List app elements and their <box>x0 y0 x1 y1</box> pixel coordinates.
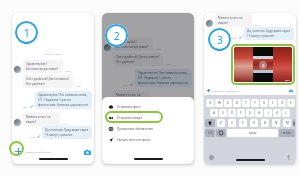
staticText: Написать сообщение <box>213 89 239 92</box>
button[interactable]: Y <box>251 99 259 107</box>
staticText: T <box>245 101 247 105</box>
button[interactable]: Олег удобный? Доста нового? Нет удобнее! <box>113 53 163 66</box>
button[interactable]: M <box>283 119 291 127</box>
button[interactable]: Language <box>209 155 214 160</box>
staticText: 123 <box>208 131 213 135</box>
staticText: вчера, 15 июня <box>44 52 63 55</box>
button[interactable]: Указать место встречи <box>102 134 194 145</box>
button[interactable]: Send video highlight <box>105 111 163 123</box>
button[interactable]: E <box>224 99 232 107</box>
staticText: Можете снять на видео? <box>26 115 57 124</box>
button[interactable]: N <box>272 119 280 127</box>
button[interactable]: B <box>261 119 269 127</box>
button[interactable]: Да, конечно. Буду дома через 15 минут, п… <box>142 104 192 117</box>
staticText: Отправить фото <box>117 105 141 109</box>
button[interactable]: Здравствуйте! Бесплатная доставка? <box>113 38 153 51</box>
button[interactable]: U <box>260 99 268 107</box>
button[interactable]: Можете снять на видео? <box>23 113 60 126</box>
button[interactable]: F <box>237 109 245 117</box>
staticText: Здравствуйте! Это лежалая котва, 5/1. На… <box>138 71 189 85</box>
staticText: G <box>249 111 252 115</box>
button[interactable]: V <box>250 119 258 127</box>
button[interactable]: Shift <box>205 119 215 127</box>
staticText: Здравствуйте! Это лежалая котва, 5/1. На… <box>38 93 89 107</box>
staticText: Z <box>220 121 222 125</box>
staticText: R <box>236 101 238 105</box>
button[interactable]: J <box>264 109 272 117</box>
button[interactable]: return <box>279 129 295 137</box>
button[interactable]: I <box>269 99 277 107</box>
button[interactable]: Можете снять на видео? <box>113 91 150 104</box>
button[interactable]: C <box>239 119 247 127</box>
button[interactable]: Здравствуйте! Это лежалая котва, 5/1. На… <box>35 91 92 109</box>
staticText: U <box>263 101 266 105</box>
staticText: Прикрепить объявление <box>117 127 153 131</box>
staticText: P <box>290 101 292 105</box>
button[interactable]: R <box>233 99 241 107</box>
button[interactable]: D <box>228 109 236 117</box>
button[interactable]: Play video <box>259 61 267 69</box>
staticText: E <box>227 101 229 105</box>
button[interactable]: H <box>255 109 263 117</box>
staticText: Олег удобный? Доста нового? Нет удобнее! <box>26 77 70 86</box>
button[interactable]: space <box>227 129 278 137</box>
staticText: J <box>268 111 269 115</box>
button[interactable]: 123 <box>205 129 215 137</box>
staticText: Написать сообщение <box>25 150 51 153</box>
staticText: M <box>286 121 289 125</box>
button[interactable]: W <box>215 99 223 107</box>
button[interactable]: Z <box>217 119 225 127</box>
staticText: Здравствуйте! Бесплатная доставка? <box>116 40 148 49</box>
staticText: I <box>272 101 274 105</box>
staticText: 15:31 <box>165 62 172 65</box>
staticText: S <box>222 111 224 115</box>
staticText: N <box>275 121 278 125</box>
button[interactable]: L <box>282 109 290 117</box>
staticText: 15:31 <box>22 105 29 108</box>
button[interactable]: Q <box>206 99 214 107</box>
button[interactable]: G <box>246 109 254 117</box>
staticText: 15:31 <box>29 135 36 138</box>
button[interactable]: P <box>287 99 295 107</box>
button[interactable]: Здравствуйте! Бесплатная доставка? <box>23 60 63 73</box>
button[interactable]: Emoji <box>216 129 226 137</box>
button[interactable]: Camera <box>288 88 293 93</box>
staticText: D <box>231 111 234 115</box>
staticText: 15:31 <box>254 23 261 26</box>
button[interactable]: Attach button highlight <box>9 141 24 156</box>
button[interactable]: Dictation <box>286 155 291 160</box>
button[interactable]: A <box>210 109 218 117</box>
staticText: Указать место встречи <box>117 138 150 142</box>
button[interactable]: Camera <box>83 148 91 156</box>
button[interactable]: Отправить видео <box>102 112 194 123</box>
button[interactable]: K <box>273 109 281 117</box>
staticText: 0:21 <box>285 78 290 81</box>
staticText: Да, конечно. Буду дома через 15 минут, п… <box>145 106 189 115</box>
button[interactable]: Да, конечно. Буду дома через 15 минут, п… <box>42 126 92 139</box>
button[interactable]: Attach <box>206 88 211 93</box>
button[interactable]: Олег удобный? Доста нового? Нет удобнее! <box>23 75 73 88</box>
staticText: W <box>218 101 221 105</box>
staticText: X <box>231 121 233 125</box>
button[interactable]: Backspace <box>293 119 295 127</box>
button[interactable]: T <box>242 99 250 107</box>
staticText: 3 <box>217 33 223 47</box>
button[interactable]: Отправить фото <box>102 101 194 112</box>
button[interactable]: Можете снять на видео? <box>215 14 252 27</box>
button[interactable]: Да, конечно. Буду дома через 15 минут, п… <box>244 27 294 40</box>
staticText: H <box>258 111 261 115</box>
staticText: return <box>283 131 292 135</box>
button[interactable]: Прикрепить объявление <box>102 123 194 134</box>
button[interactable]: X <box>228 119 236 127</box>
staticText: Здравствуйте! Бесплатная доставка? <box>26 62 58 71</box>
button[interactable]: Здравствуйте! Это лежалая котва, 5/1. На… <box>135 69 192 87</box>
button[interactable]: Attach <box>14 147 23 156</box>
staticText: Отправить видео <box>117 116 143 120</box>
staticText: Y <box>254 101 256 105</box>
staticText: V <box>253 121 255 125</box>
button[interactable]: S <box>219 109 227 117</box>
staticText: A <box>213 111 216 115</box>
button[interactable]: O <box>278 99 286 107</box>
staticText: Можете снять на видео? <box>218 16 249 25</box>
